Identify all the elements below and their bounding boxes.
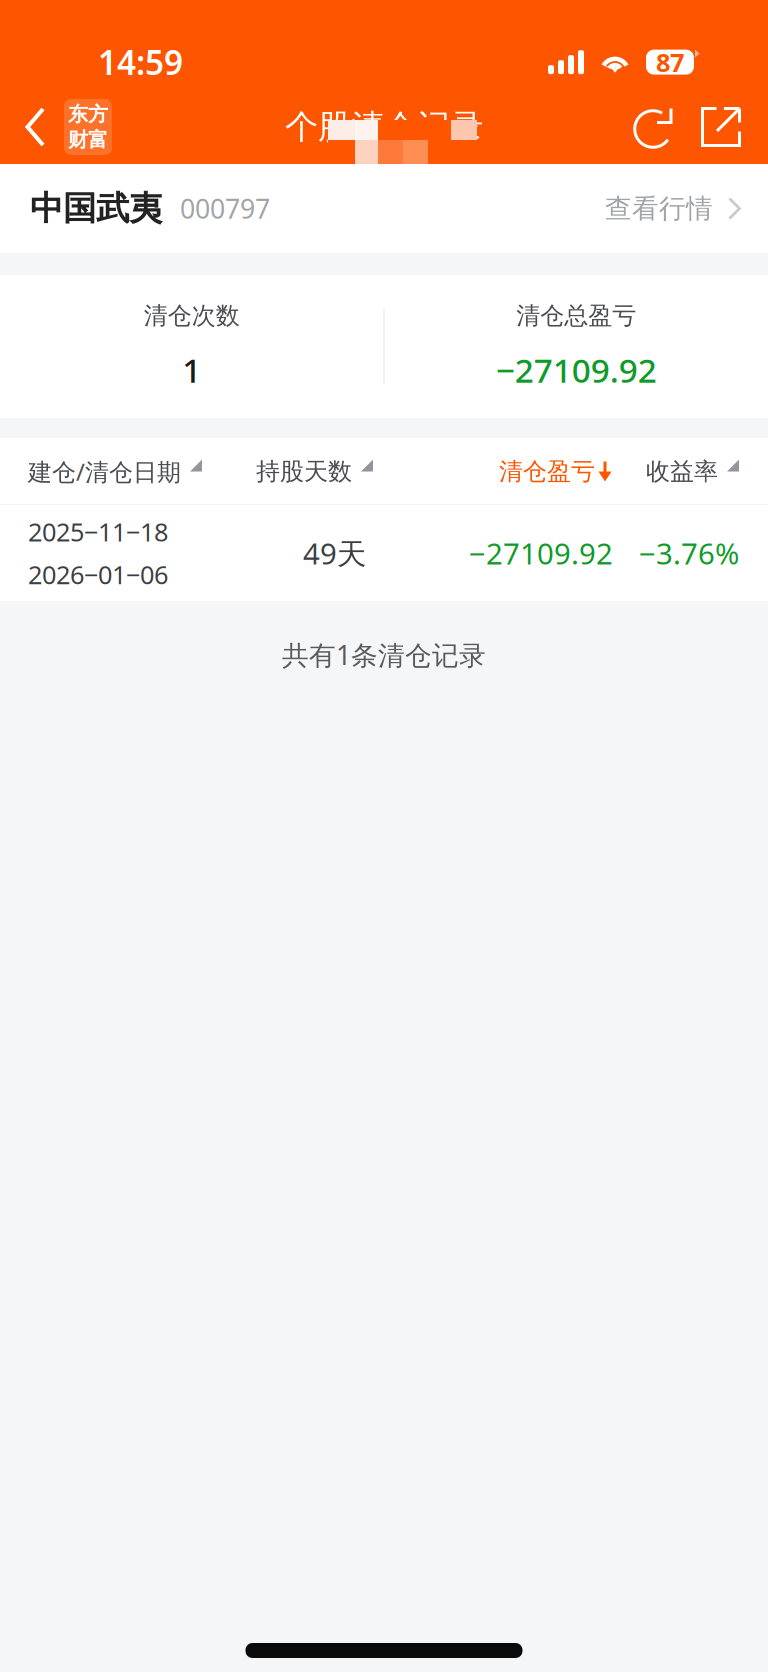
button[interactable]: 刷新: [620, 90, 688, 164]
button[interactable]: 收益率: [613, 438, 739, 505]
staticText: 东方: [68, 102, 108, 126]
staticText: −3.76%: [639, 533, 739, 572]
staticText: 1: [182, 348, 201, 392]
staticText: −27109.92: [496, 348, 657, 392]
staticText: 个股清仓记录: [285, 106, 483, 147]
staticText: 2025−11−18: [28, 515, 168, 548]
staticText: 49天: [303, 533, 366, 572]
staticText: 87: [656, 45, 684, 79]
staticText: −27109.92: [469, 533, 613, 572]
button[interactable]: 分享: [688, 90, 754, 164]
staticText: 清仓盈亏: [499, 457, 595, 486]
staticText: 共有1条清仓记录: [282, 637, 486, 672]
staticText: 中国武夷: [30, 188, 162, 229]
staticText: 清仓总盈亏: [516, 301, 636, 331]
staticText: 2026−01−06: [28, 557, 168, 591]
staticText: 14:59: [98, 40, 183, 84]
staticText: 收益率: [646, 457, 718, 486]
staticText: 持股天数: [256, 457, 352, 486]
button[interactable]: 持股天数: [256, 438, 413, 505]
button[interactable]: 中国武夷: [0, 164, 768, 253]
button[interactable]: 2025−11−18: [0, 505, 768, 601]
button[interactable]: 清仓盈亏: [413, 438, 613, 505]
button[interactable]: 建仓/清仓日期: [28, 438, 256, 505]
staticText: 000797: [180, 191, 270, 226]
staticText: 清仓次数: [144, 301, 240, 331]
staticText: 建仓/清仓日期: [28, 456, 181, 487]
button[interactable]: 返回东方财富: [0, 90, 126, 164]
staticText: 财富: [68, 127, 108, 152]
staticText: 查看行情: [605, 192, 713, 225]
